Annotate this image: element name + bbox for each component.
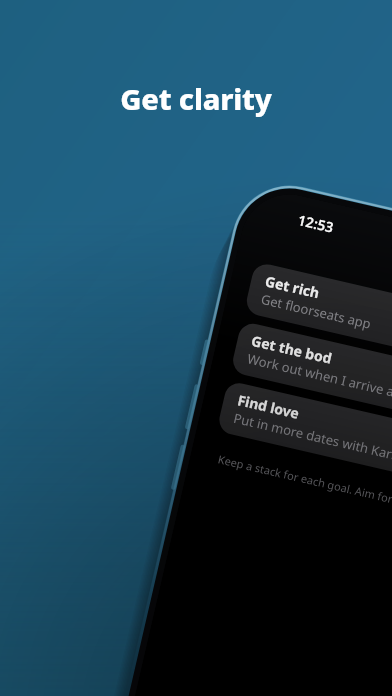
staticText: Get clarity [0, 79, 392, 118]
button[interactable]: Goal stack preview [0, 0, 392, 696]
